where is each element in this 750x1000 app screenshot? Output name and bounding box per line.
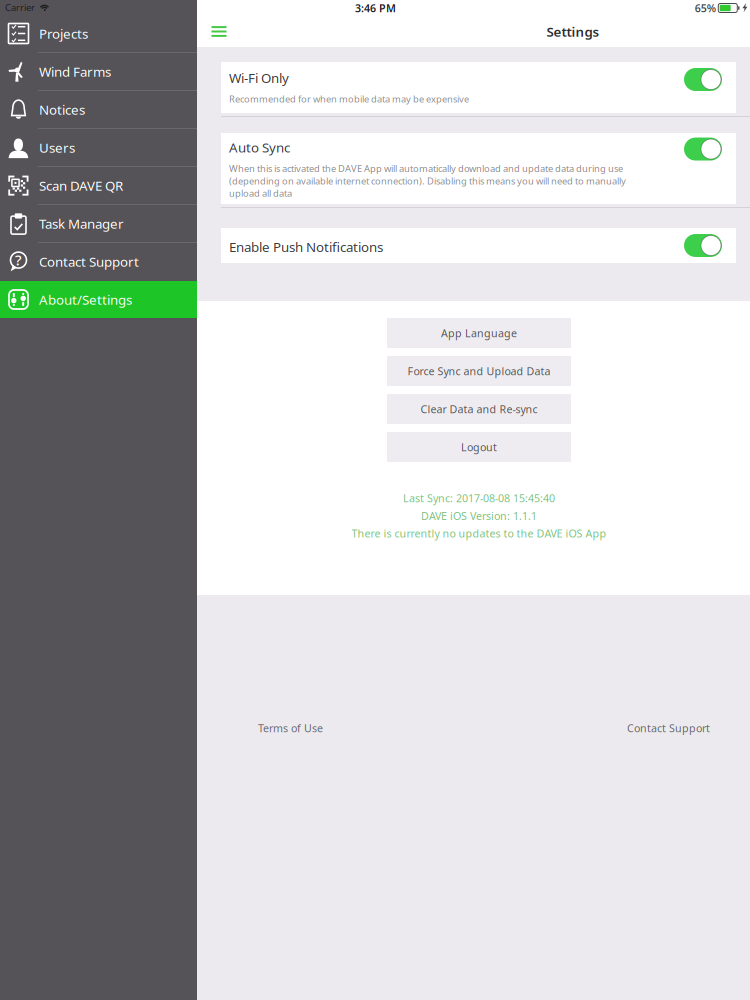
staticText: ? (15, 250, 22, 270)
button[interactable]: Logout (387, 432, 571, 462)
staticText: Force Sync and Upload Data (407, 364, 550, 378)
staticText: 3:46 PM (355, 1, 396, 15)
button[interactable]: Notices (0, 91, 197, 129)
button[interactable]: Projects (0, 15, 197, 53)
button[interactable]: Auto Sync (684, 132, 722, 161)
button[interactable]: Force Sync and Upload Data (387, 356, 571, 386)
staticText: About/Settings (39, 291, 132, 308)
staticText: Notices (39, 101, 85, 118)
staticText: Task Manager (39, 215, 124, 232)
button[interactable]: Enable Push Notifications (684, 228, 722, 257)
button[interactable]: Clear Data and Re-sync (387, 394, 571, 424)
staticText: 65% (695, 1, 716, 15)
button[interactable]: App Language (387, 318, 571, 348)
button[interactable]: Contact Support (627, 721, 710, 735)
staticText: Clear Data and Re-sync (420, 402, 537, 416)
button[interactable]: Wind Farms (0, 53, 197, 91)
staticText: Terms of Use (258, 721, 323, 735)
staticText: Last Sync: 2017-08-08 15:45:40 (403, 491, 555, 505)
staticText: Wi-Fi Only (229, 69, 289, 87)
staticText: Scan DAVE QR (39, 177, 123, 194)
button[interactable]: Scan DAVE QR (0, 167, 197, 205)
button[interactable]: Terms of Use (258, 721, 323, 735)
button[interactable]: Wi-Fi Only (684, 62, 722, 91)
button[interactable]: Users (0, 129, 197, 167)
button[interactable]: Task Manager (0, 205, 197, 243)
staticText: Logout (461, 440, 497, 454)
staticText: Wind Farms (39, 63, 111, 80)
staticText: Enable Push Notifications (229, 238, 383, 256)
staticText: Projects (39, 25, 88, 42)
staticText: Contact Support (39, 253, 139, 270)
staticText: When this is activated the DAVE App will… (229, 162, 626, 199)
staticText: DAVE iOS Version: 1.1.1 (421, 509, 537, 523)
staticText: There is currently no updates to the DAV… (351, 526, 606, 540)
staticText: Carrier (5, 1, 35, 14)
staticText: Users (39, 139, 75, 156)
staticText: App Language (441, 326, 517, 340)
button[interactable]: ? (0, 243, 197, 281)
staticText: Auto Sync (229, 139, 290, 156)
staticText: Contact Support (627, 721, 710, 735)
button[interactable]: Menu (197, 16, 241, 47)
staticText: Recommended for when mobile data may be … (229, 93, 469, 105)
button[interactable]: About/Settings (0, 281, 197, 319)
staticText: Settings (546, 23, 599, 40)
